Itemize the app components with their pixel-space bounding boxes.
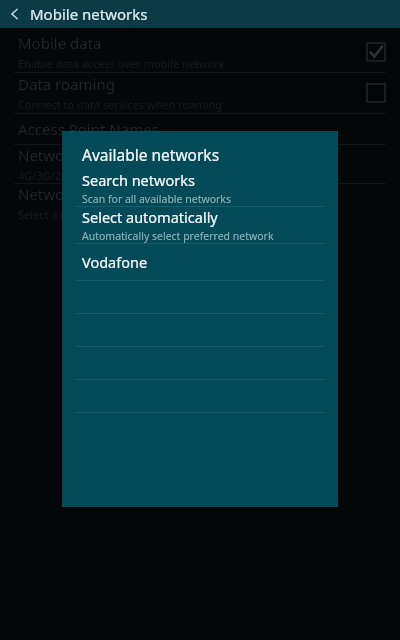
button[interactable]: Network mode — [0, 145, 400, 183]
button[interactable]: Select automatically — [62, 207, 338, 243]
staticText: Connect to data services when roaming — [18, 97, 223, 112]
staticText: Network mode — [18, 145, 124, 165]
button[interactable]: Access Point Names — [0, 114, 400, 144]
button[interactable]: Search networks — [62, 169, 338, 206]
staticText: Vodafone — [82, 252, 148, 272]
staticText: Enable data access over mobile network — [18, 56, 225, 71]
staticText: 4G/3G/2G (auto connect) — [18, 168, 146, 183]
staticText: Select automatically — [82, 207, 218, 227]
button[interactable]: Vodafone — [62, 244, 338, 280]
staticText: Available networks — [82, 144, 220, 165]
staticText: Mobile networks — [30, 4, 148, 24]
button[interactable]: Mobile data — [0, 32, 400, 72]
staticText: Access Point Names — [18, 119, 159, 139]
staticText: Scan for all available networks — [82, 192, 232, 206]
button[interactable]: Data roaming — [0, 73, 400, 113]
button[interactable]: Back — [0, 0, 30, 28]
staticText: Select a network operator — [18, 207, 152, 222]
staticText: Search networks — [82, 170, 195, 190]
staticText: Network operators — [18, 184, 152, 204]
staticText: Mobile data — [18, 33, 102, 53]
staticText: Data roaming — [18, 74, 115, 94]
staticText: Automatically select preferred network — [82, 229, 274, 243]
button[interactable]: Network operators — [0, 184, 400, 222]
